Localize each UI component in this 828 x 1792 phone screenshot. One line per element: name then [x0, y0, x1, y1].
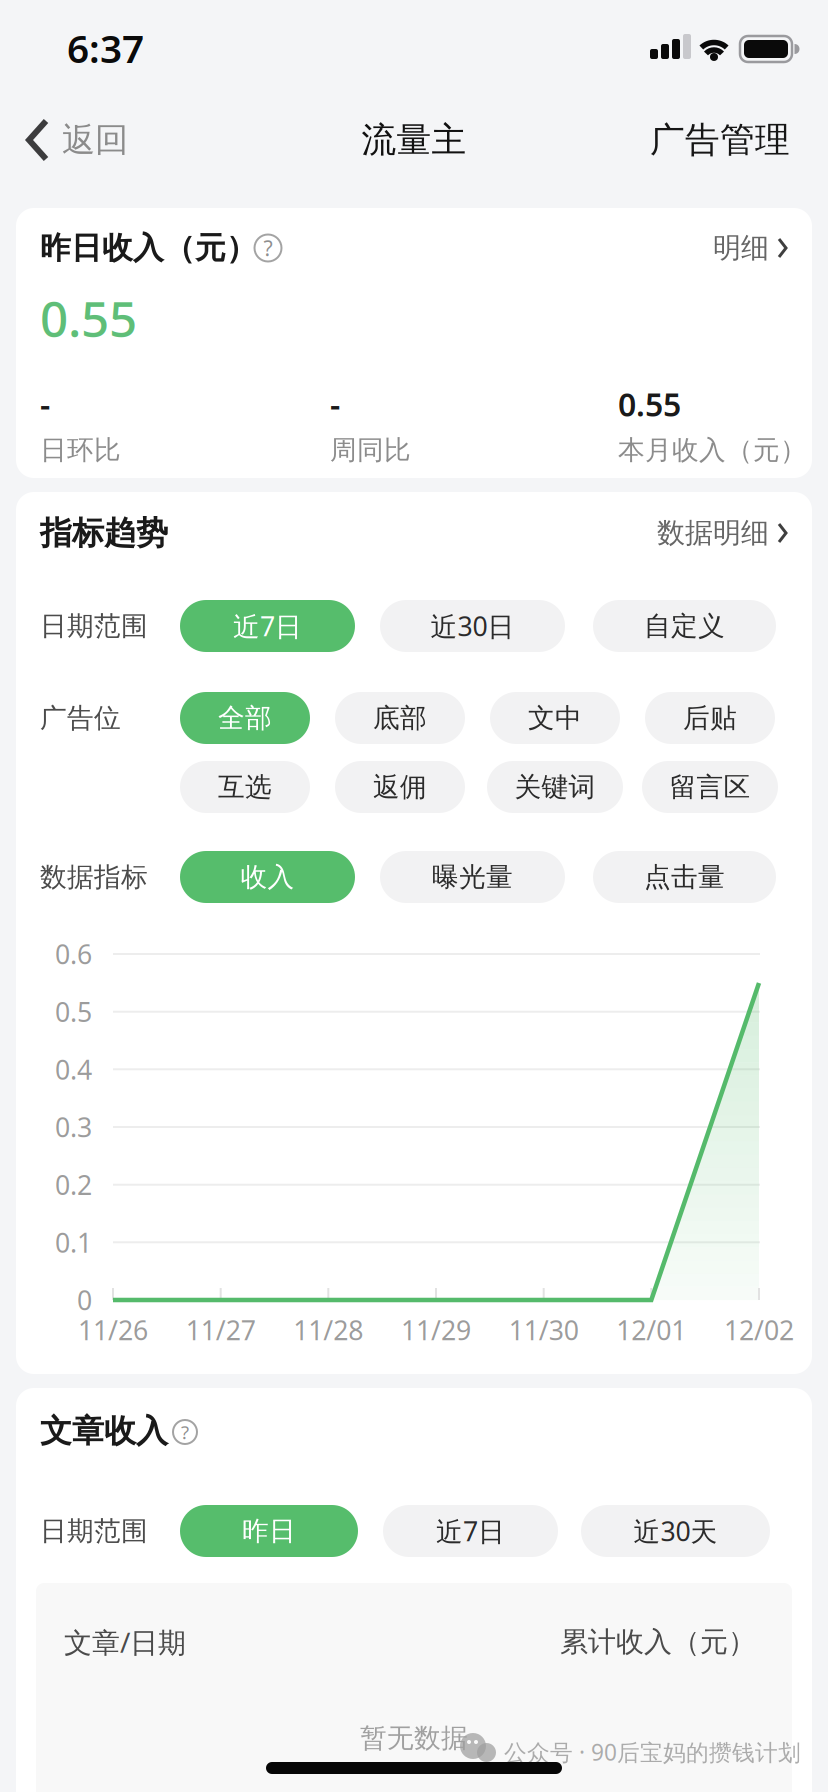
staticText: 0.4: [55, 1052, 92, 1087]
staticText: 底部: [373, 702, 427, 734]
staticText: 昨日: [242, 1515, 296, 1547]
button[interactable]: 互选: [180, 761, 310, 813]
button[interactable]: 点击量: [593, 851, 776, 903]
button[interactable]: 文中: [490, 692, 620, 744]
staticText: 收入: [240, 861, 294, 893]
staticText: 0.55: [40, 285, 137, 351]
staticText: -: [330, 383, 340, 425]
button[interactable]: 近7日: [180, 600, 355, 652]
button[interactable]: 底部: [335, 692, 465, 744]
staticText: 0.5: [55, 994, 92, 1029]
staticText: 日环比: [40, 434, 121, 466]
button[interactable]: 关键词: [487, 761, 623, 813]
staticText: 广告位: [40, 702, 121, 734]
staticText: 昨日收入（元）: [40, 229, 257, 267]
button[interactable]: 留言区: [642, 761, 778, 813]
staticText: 近30天: [633, 1513, 717, 1549]
button[interactable]: 近7日: [383, 1505, 558, 1557]
staticText: 数据指标: [40, 861, 148, 893]
button[interactable]: 近30天: [581, 1505, 770, 1557]
button[interactable]: 帮助: [173, 1420, 197, 1444]
staticText: 本月收入（元）: [618, 434, 807, 466]
staticText: 近30日: [430, 608, 514, 644]
staticText: 累计收入（元）: [560, 1625, 756, 1659]
staticText: 0.3: [55, 1109, 92, 1145]
button[interactable]: 曝光量: [380, 851, 565, 903]
staticText: 12/02: [724, 1312, 794, 1348]
staticText: 周同比: [330, 434, 411, 466]
staticText: 0.6: [55, 936, 92, 972]
staticText: 11/29: [401, 1312, 471, 1348]
staticText: 返回: [62, 119, 128, 160]
button[interactable]: 昨日: [180, 1505, 358, 1557]
staticText: 12/01: [616, 1312, 686, 1348]
staticText: 留言区: [669, 771, 750, 803]
staticText: ?: [263, 234, 272, 262]
button[interactable]: 数据明细: [608, 513, 788, 553]
staticText: 流量主: [361, 119, 466, 161]
button[interactable]: 近30日: [380, 600, 565, 652]
staticText: 0.2: [55, 1167, 92, 1202]
staticText: 11/30: [509, 1312, 579, 1348]
button[interactable]: 帮助: [254, 234, 281, 261]
staticText: 日期范围: [40, 610, 148, 642]
staticText: 近7日: [233, 608, 302, 644]
staticText: 0.1: [55, 1225, 92, 1260]
staticText: 0: [77, 1282, 92, 1318]
staticText: 自定义: [644, 610, 725, 642]
button[interactable]: 返佣: [335, 761, 465, 813]
staticText: 11/26: [78, 1312, 148, 1348]
staticText: 6:37: [67, 22, 144, 74]
staticText: 点击量: [644, 861, 725, 893]
staticText: 关键词: [514, 771, 595, 803]
button[interactable]: 收入: [180, 851, 355, 903]
button[interactable]: 广告管理: [630, 118, 790, 162]
staticText: 广告管理: [650, 119, 790, 161]
staticText: 数据明细: [657, 516, 769, 550]
staticText: 日期范围: [40, 1515, 148, 1547]
staticText: -: [40, 383, 50, 425]
button[interactable]: 后贴: [645, 692, 775, 744]
staticText: 暂无数据: [360, 1722, 468, 1754]
staticText: 11/27: [186, 1312, 256, 1348]
staticText: 返佣: [373, 771, 427, 803]
staticText: 0.55: [618, 383, 681, 425]
staticText: 曝光量: [432, 861, 513, 893]
staticText: 文章收入: [40, 1411, 168, 1451]
staticText: 近7日: [436, 1513, 505, 1549]
button[interactable]: 明细: [668, 228, 788, 268]
staticText: 文中: [528, 702, 582, 734]
staticText: 文章/日期: [64, 1623, 186, 1661]
button[interactable]: 自定义: [593, 600, 776, 652]
staticText: 明细: [713, 231, 769, 265]
staticText: 互选: [218, 771, 272, 803]
staticText: 全部: [218, 702, 272, 734]
staticText: 公众号 · 90后宝妈的攒钱计划: [504, 1737, 801, 1767]
staticText: 后贴: [683, 702, 737, 734]
button[interactable]: 全部: [180, 692, 310, 744]
staticText: 指标趋势: [40, 513, 168, 553]
staticText: ?: [181, 1420, 189, 1444]
staticText: 11/28: [293, 1312, 363, 1348]
button[interactable]: 返回: [20, 108, 160, 172]
